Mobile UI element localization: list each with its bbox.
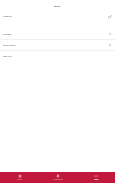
staticText: Settings xyxy=(3,33,12,36)
button[interactable]: Home xyxy=(0,172,39,183)
button[interactable]: Sign out xyxy=(0,51,115,61)
button[interactable]: Settings xyxy=(0,29,115,39)
button[interactable]: More xyxy=(77,172,115,183)
button[interactable]: Information xyxy=(0,40,115,50)
staticText: More xyxy=(77,178,115,180)
staticText: More xyxy=(54,4,61,7)
staticText: Notifications xyxy=(39,178,77,180)
staticText: Network xyxy=(3,15,13,18)
staticText: Sign out xyxy=(3,55,12,58)
button[interactable]: Notifications xyxy=(39,172,77,183)
button[interactable]: Network xyxy=(0,13,115,20)
staticText: Home xyxy=(0,178,39,180)
staticText: Information xyxy=(3,44,16,47)
